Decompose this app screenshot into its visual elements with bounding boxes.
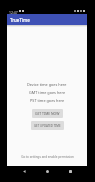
button[interactable]: GET TIME NOW [32,109,63,118]
staticText: Device time goes here [27,82,67,87]
staticText: PST time goes here [30,98,65,103]
staticText: GET TIME NOW [35,111,60,116]
button[interactable]: Home [36,166,59,177]
staticText: GET UPDATED TIME [34,124,61,128]
button[interactable]: Back [13,166,36,177]
staticText: 12:47 [9,10,18,15]
staticText: Go to settings and enable permission [21,155,74,159]
staticText: TrueTime [10,17,30,23]
button[interactable]: GET UPDATED TIME [31,121,64,130]
staticText: GMT time goes here [29,90,66,95]
button[interactable]: Recent apps [59,166,82,177]
